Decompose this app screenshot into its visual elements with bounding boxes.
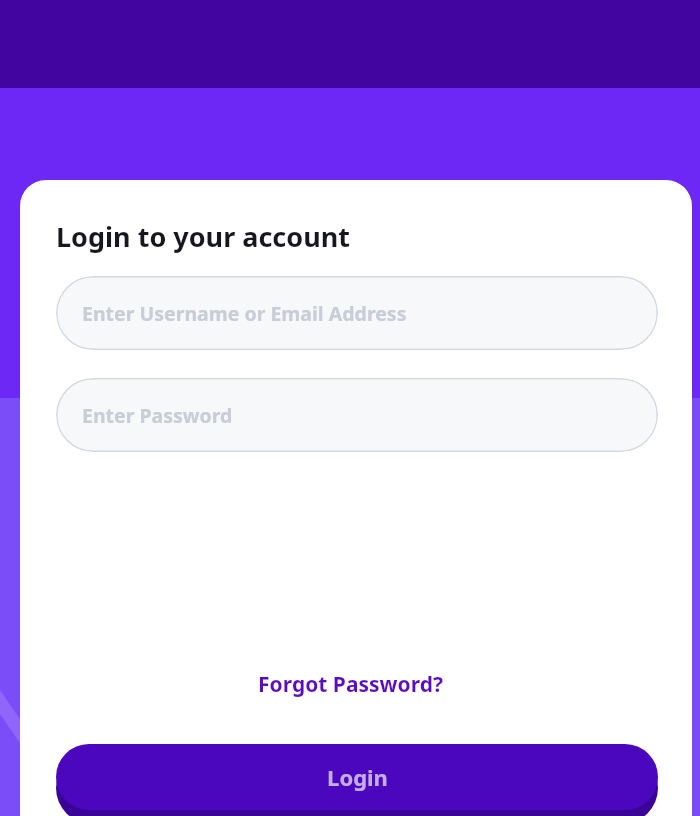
staticText: Forgot Password? bbox=[258, 670, 443, 699]
staticText: Login to your account bbox=[56, 218, 350, 255]
button[interactable]: Login bbox=[56, 744, 658, 810]
button[interactable]: Enter Password bbox=[56, 378, 658, 452]
staticText: Enter Username or Email Address bbox=[82, 300, 407, 327]
button[interactable]: Forgot Password? bbox=[0, 667, 700, 701]
button[interactable]: Enter Username or Email Address bbox=[56, 276, 658, 350]
staticText: Login bbox=[327, 762, 388, 792]
staticText: Enter Password bbox=[82, 402, 233, 429]
